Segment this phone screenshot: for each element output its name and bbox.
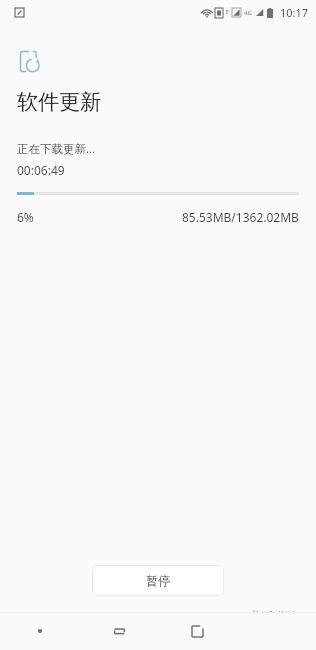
button[interactable]: Home bbox=[79, 612, 158, 650]
staticText: 软件更新 bbox=[17, 89, 101, 115]
button[interactable]: Back bbox=[158, 612, 237, 650]
staticText: 00:06:49 bbox=[17, 162, 65, 178]
button[interactable]: 暂停 bbox=[92, 565, 224, 596]
button[interactable]: Recents bbox=[0, 612, 79, 650]
staticText: 暂停 bbox=[146, 573, 170, 588]
staticText: 盖乐世社区 bbox=[250, 609, 310, 624]
staticText: 10:17 bbox=[280, 5, 309, 20]
staticText: 6% bbox=[17, 209, 34, 225]
staticText: E bbox=[226, 9, 229, 16]
staticText: 4G bbox=[244, 9, 252, 17]
staticText: 85.53MB/1362.02MB bbox=[182, 209, 299, 225]
staticText: 正在下载更新... bbox=[17, 141, 96, 157]
